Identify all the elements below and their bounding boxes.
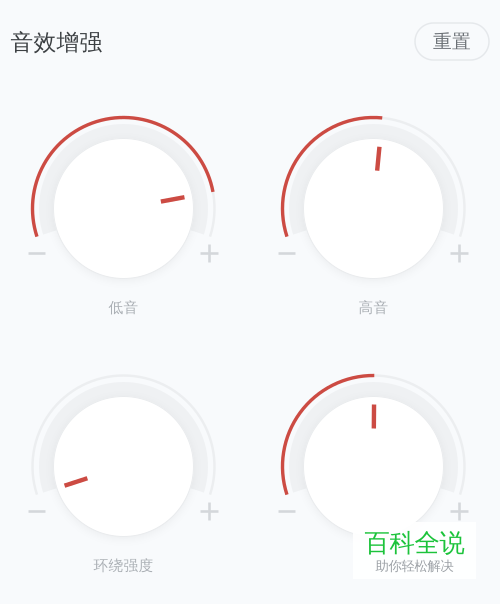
staticText: 百科全说 xyxy=(364,527,464,558)
button[interactable] xyxy=(250,346,500,604)
button[interactable]: 重置 xyxy=(415,23,489,60)
staticText: 高音 xyxy=(358,298,388,316)
staticText: 环绕强度 xyxy=(93,556,153,574)
staticText: 助你轻松解决 xyxy=(375,558,453,574)
button[interactable]: 低音 xyxy=(0,88,250,346)
staticText: 音效增强 xyxy=(10,29,102,56)
staticText: 低音 xyxy=(108,298,138,316)
button[interactable]: 高音 xyxy=(250,88,500,346)
button[interactable]: 环绕强度 xyxy=(0,346,250,604)
staticText: 重置 xyxy=(433,30,471,53)
